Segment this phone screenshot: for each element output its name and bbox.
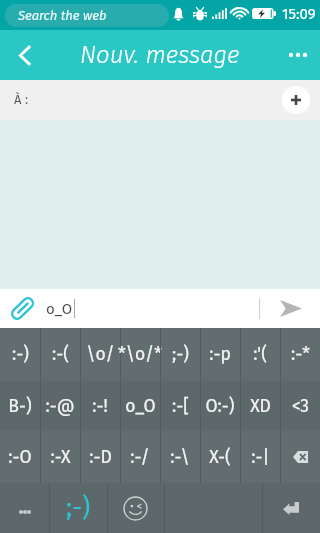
button[interactable]: :-) — [0, 328, 40, 381]
button[interactable]: \o/ — [80, 328, 120, 381]
staticText: \o/ — [86, 344, 115, 365]
button[interactable]: Enter — [262, 483, 320, 533]
button[interactable]: Search the web — [5, 4, 169, 27]
staticText: :-@ — [45, 396, 75, 417]
staticText: *\o/* — [118, 344, 162, 365]
staticText: :-O — [8, 447, 32, 468]
staticText: o_O — [125, 396, 156, 417]
button[interactable]: B-) — [0, 381, 40, 431]
button[interactable]: Send — [262, 289, 320, 328]
staticText: :-) — [12, 344, 29, 365]
button[interactable] — [280, 431, 320, 483]
button[interactable]: :-p — [200, 328, 240, 381]
staticText: :-D — [89, 447, 112, 468]
staticText: :-\ — [170, 447, 190, 468]
button[interactable]: Emoji — [107, 483, 164, 533]
staticText: XD — [250, 396, 271, 417]
staticText: B-) — [8, 396, 32, 417]
staticText: :-X — [50, 447, 71, 468]
button[interactable]: :-| — [240, 431, 280, 483]
button[interactable]: :-\ — [160, 431, 200, 483]
staticText: À : — [14, 92, 29, 108]
button[interactable]: :-@ — [40, 381, 80, 431]
button[interactable]: Back — [0, 30, 48, 80]
staticText: X-( — [209, 447, 231, 468]
button[interactable]: <3 — [280, 381, 320, 431]
staticText: :-( — [52, 344, 69, 365]
button[interactable]: ;-) — [49, 483, 107, 533]
button[interactable]: :-! — [80, 381, 120, 431]
button[interactable]: Attach — [0, 289, 44, 328]
staticText: o_O — [46, 300, 73, 318]
button[interactable]: :-O — [0, 431, 40, 483]
button[interactable]: XD — [240, 381, 280, 431]
staticText: :-p — [209, 344, 231, 365]
button[interactable]: :-( — [40, 328, 80, 381]
staticText: :-| — [251, 447, 270, 468]
button[interactable]: :-D — [80, 431, 120, 483]
staticText: Search the web — [18, 8, 107, 24]
button[interactable]: O:-) — [200, 381, 240, 431]
button[interactable]: :-[ — [160, 381, 200, 431]
button[interactable]: :-/ — [120, 431, 160, 483]
staticText: ;-) — [66, 493, 91, 523]
staticText: :-/ — [130, 447, 150, 468]
staticText: :-[ — [172, 396, 189, 417]
staticText: 15:09 — [282, 5, 316, 23]
button[interactable]: More options — [276, 33, 320, 77]
button[interactable]: :-X — [40, 431, 80, 483]
button[interactable]: *\o/* — [120, 328, 160, 381]
button[interactable]: Add contact — [282, 86, 310, 114]
button[interactable]: X-( — [200, 431, 240, 483]
staticText: Nouv. message — [80, 41, 240, 70]
staticText: :'( — [253, 344, 267, 365]
staticText: O:-) — [205, 396, 235, 417]
staticText: <3 — [292, 396, 309, 417]
button[interactable]: :'( — [240, 328, 280, 381]
button[interactable]: Symbols — [0, 483, 49, 533]
button[interactable]: ;-) — [160, 328, 200, 381]
staticText: :-* — [291, 344, 310, 365]
staticText: :-! — [92, 396, 108, 417]
button[interactable]: o_O — [120, 381, 160, 431]
button[interactable]: :-* — [280, 328, 320, 381]
staticText: ;-) — [172, 344, 189, 365]
